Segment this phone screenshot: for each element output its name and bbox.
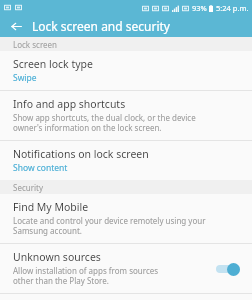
button[interactable]: Screen lock type (0, 51, 252, 90)
button[interactable]: Unknown sources (0, 244, 252, 293)
button[interactable]: Info and app shortcuts (0, 91, 252, 140)
staticText: Lock screen and security (32, 18, 170, 34)
button[interactable]: Notifications on lock screen (0, 141, 252, 180)
button[interactable]: Back (7, 17, 25, 35)
staticText: Show content (13, 162, 68, 174)
button[interactable]: Unknown sources, on (214, 261, 244, 277)
button[interactable]: Find My Mobile (0, 194, 252, 243)
staticText: Security (13, 182, 44, 193)
staticText: Find My Mobile (13, 200, 89, 214)
staticText: Swipe (13, 72, 37, 84)
staticText: Info and app shortcuts (13, 97, 126, 111)
staticText: Screen lock type (13, 57, 93, 71)
staticText: Show app shortcuts, the dual clock, or t… (13, 112, 196, 134)
staticText: Lock screen (13, 39, 58, 50)
staticText: Unknown sources (13, 250, 101, 264)
staticText: Allow installation of apps from sources … (13, 265, 159, 287)
staticText: Locate and control your device remotely … (13, 215, 206, 237)
staticText: 93% (192, 3, 207, 13)
staticText: 5:24 p.m. (216, 3, 249, 13)
staticText: Notifications on lock screen (13, 147, 149, 161)
